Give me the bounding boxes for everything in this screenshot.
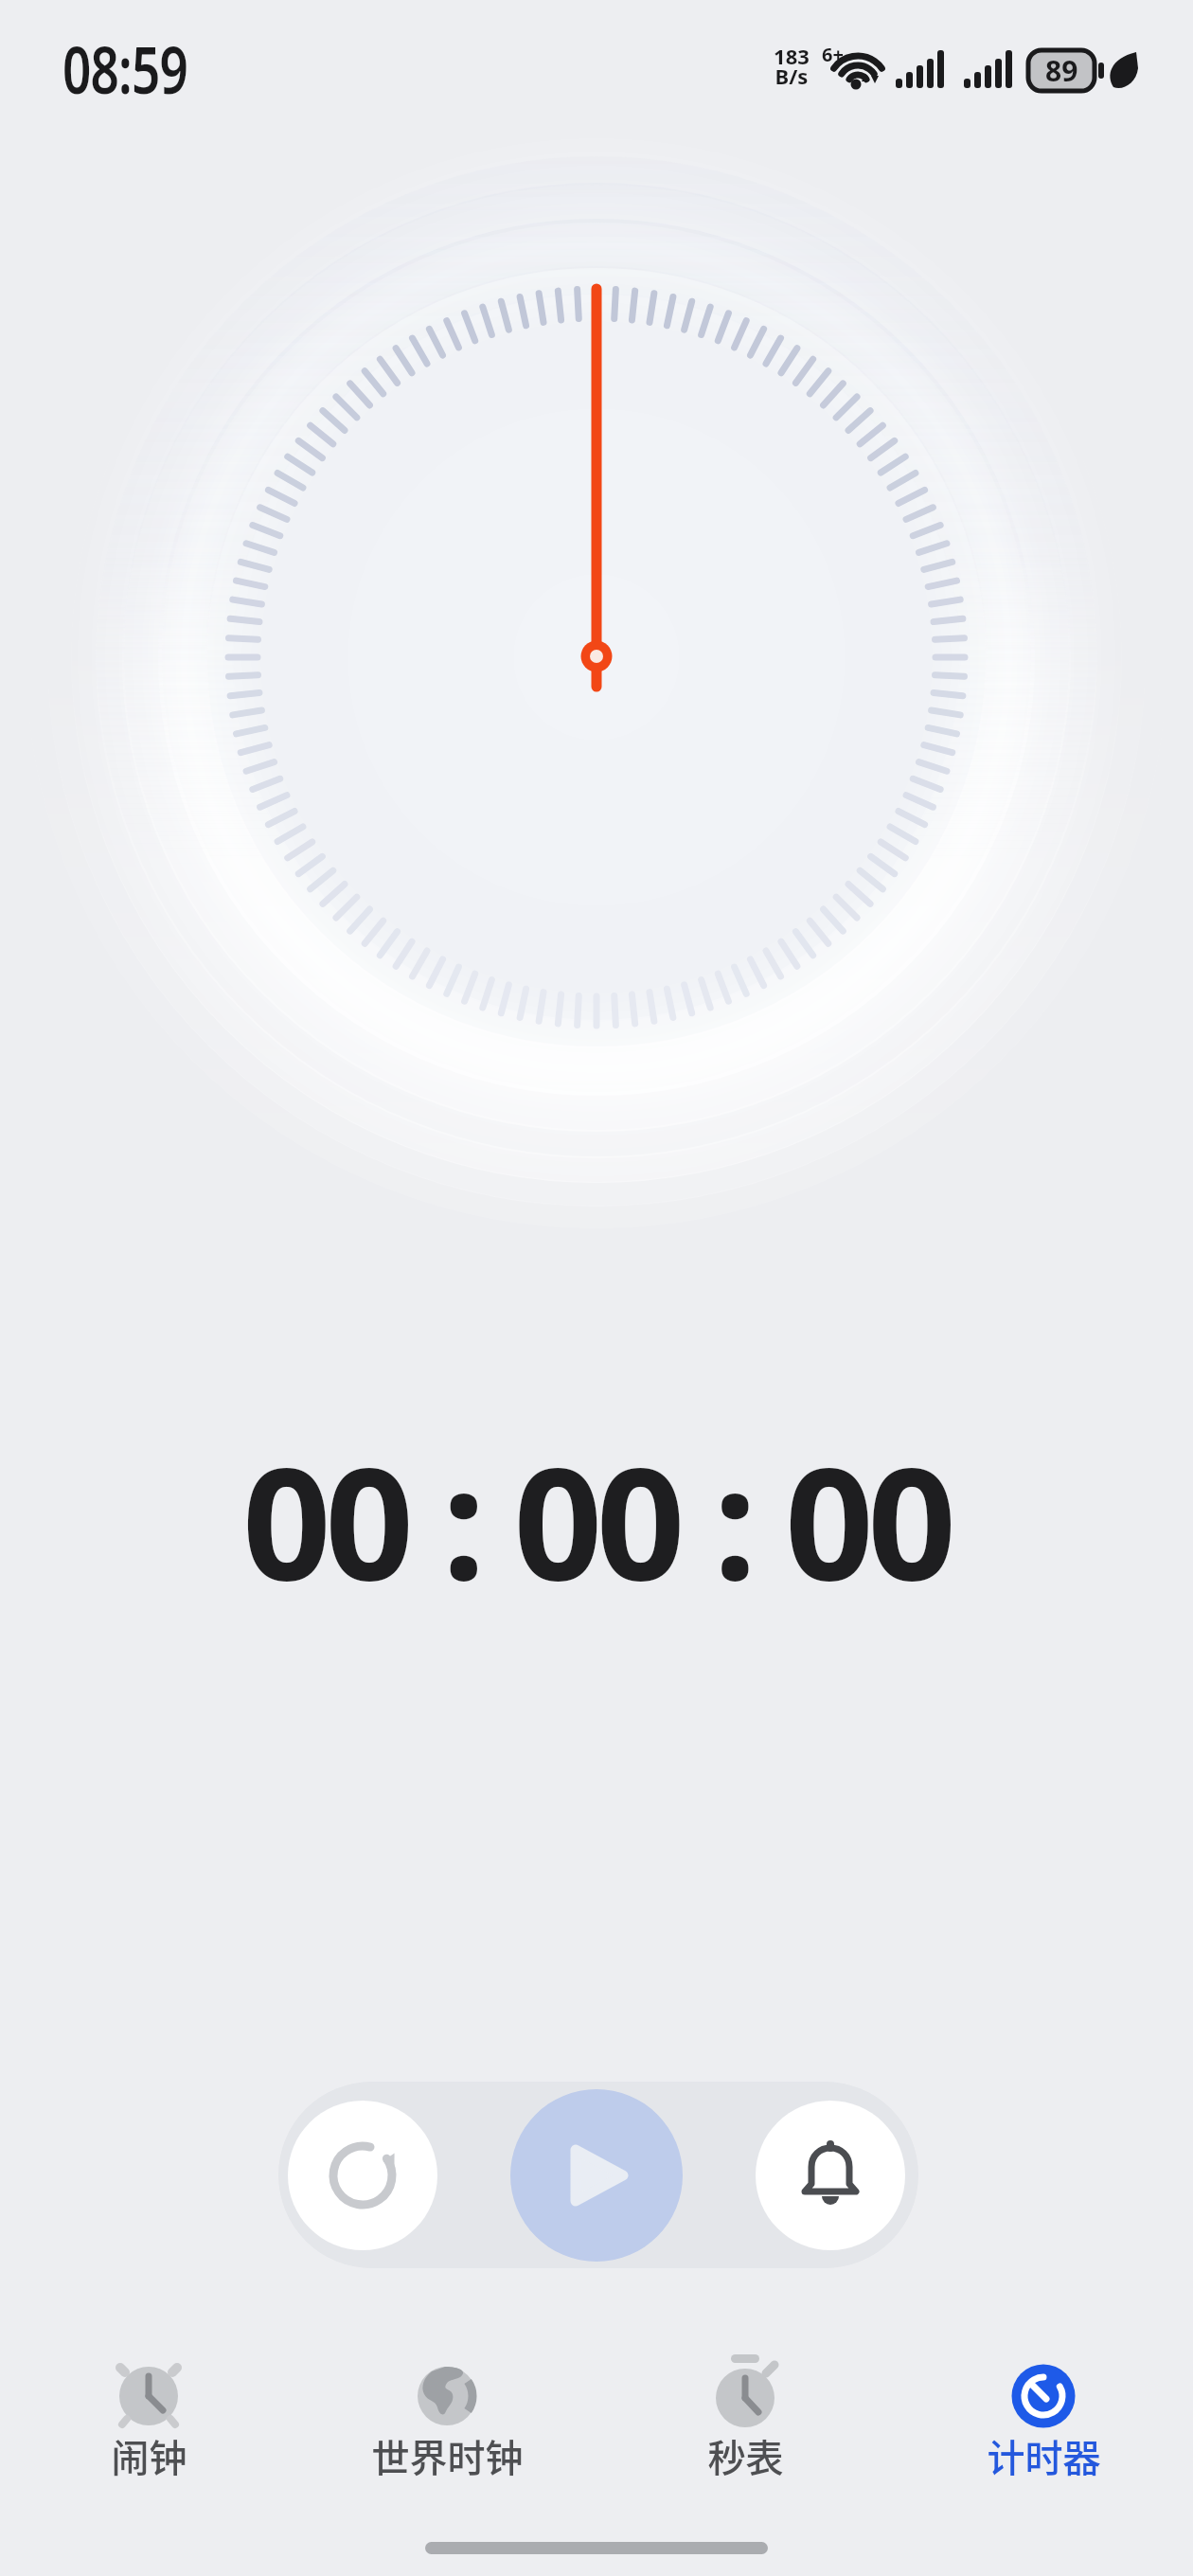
staticText: 闹钟 [0,2428,298,2483]
staticText: 08:59 [62,25,188,113]
button[interactable]: 计时器 [895,2332,1193,2493]
staticText: 世界时钟 [298,2428,596,2483]
button[interactable] [288,2101,437,2250]
button[interactable]: 秒表 [596,2332,895,2493]
staticText: 6+ [822,42,844,67]
button[interactable] [510,2089,683,2262]
button[interactable] [756,2101,905,2250]
button[interactable]: 闹钟 [0,2332,298,2493]
button[interactable]: 世界时钟 [298,2332,596,2493]
staticText: 00 : 00 : 00 [242,1414,951,1625]
staticText: 183 B/s [763,42,820,91]
staticText: 计时器 [895,2428,1193,2483]
staticText: 89 [1045,51,1078,90]
staticText: 秒表 [596,2428,895,2483]
